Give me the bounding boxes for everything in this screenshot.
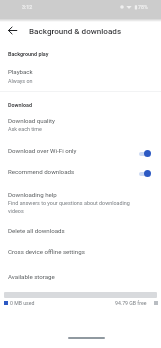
staticText: Background & downloads <box>29 26 122 35</box>
staticText: 94.79 GB free <box>115 300 147 306</box>
staticText: Delete all downloads <box>8 227 65 234</box>
button[interactable] <box>0 243 161 263</box>
button[interactable]: Back <box>0 18 24 42</box>
staticText: Cross device offline settings <box>8 248 85 255</box>
staticText: Available storage <box>8 273 55 280</box>
staticText: 78% <box>138 4 148 10</box>
staticText: Download over Wi-Fi only <box>8 147 77 154</box>
button[interactable] <box>0 163 161 183</box>
staticText: 0 MB used <box>10 300 35 306</box>
button[interactable] <box>0 222 161 242</box>
staticText: Recommend downloads <box>8 168 75 175</box>
staticText: Download <box>8 102 32 108</box>
button[interactable] <box>0 186 161 220</box>
staticText: Download quality <box>8 117 55 124</box>
staticText: Downloading help <box>8 191 57 198</box>
staticText: Find answers to your questions about dow… <box>8 200 141 215</box>
button[interactable] <box>0 143 161 163</box>
staticText: Playback <box>8 68 33 75</box>
staticText: Background play <box>8 51 49 57</box>
staticText: 3:12 <box>22 4 33 10</box>
button[interactable] <box>0 62 161 86</box>
button[interactable] <box>0 114 161 138</box>
staticText: Ask each time <box>8 126 42 132</box>
staticText: Always on <box>8 78 33 84</box>
